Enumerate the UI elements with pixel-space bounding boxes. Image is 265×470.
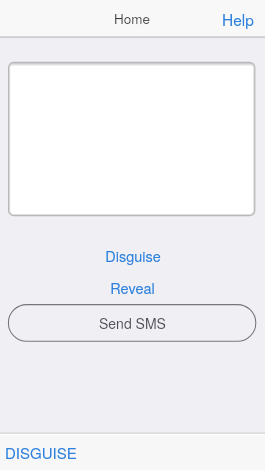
staticText: Help bbox=[222, 8, 254, 30]
button[interactable]: Message text field bbox=[9, 61, 255, 215]
button[interactable]: DISGUISE bbox=[0, 435, 87, 469]
button[interactable]: Disguise bbox=[0, 243, 265, 267]
button[interactable]: Help bbox=[208, 0, 265, 37]
staticText: Reveal bbox=[110, 277, 155, 298]
button[interactable]: Send SMS bbox=[8, 304, 256, 342]
staticText: DISGUISE bbox=[5, 442, 77, 463]
staticText: Home bbox=[114, 9, 151, 28]
button[interactable]: Reveal bbox=[0, 275, 265, 299]
staticText: Disguise bbox=[105, 245, 161, 266]
staticText: Send SMS bbox=[99, 313, 166, 333]
